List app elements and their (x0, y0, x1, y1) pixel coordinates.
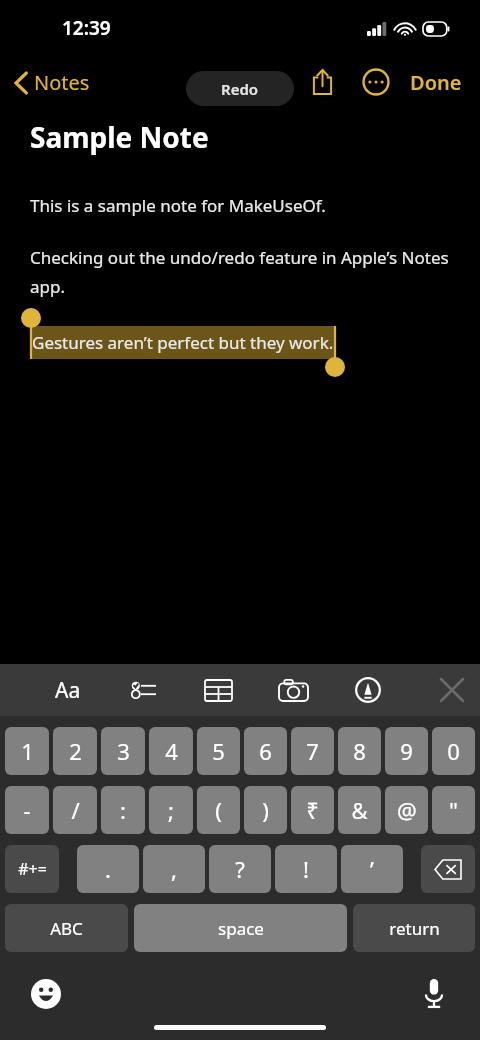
button[interactable]: & (338, 786, 381, 834)
button[interactable]: Format (44, 666, 92, 714)
button[interactable]: , (143, 845, 205, 893)
button[interactable]: ABC (5, 904, 128, 952)
button[interactable]: " (432, 786, 475, 834)
button[interactable]: return (353, 904, 475, 952)
staticText: 5 (212, 736, 225, 766)
staticText: & (351, 795, 368, 825)
staticText: ’ (370, 854, 374, 884)
staticText: ? (235, 854, 245, 884)
button[interactable]: Done (404, 63, 468, 102)
button[interactable]: Redo (186, 71, 294, 106)
staticText: ( (215, 795, 222, 825)
staticText: return (389, 917, 440, 940)
button[interactable]: ; (149, 786, 193, 834)
button[interactable]: ( (197, 786, 240, 834)
staticText: 8 (353, 736, 366, 766)
staticText: Aa (55, 676, 81, 705)
staticText: ! (303, 854, 309, 884)
button[interactable]: . (77, 845, 139, 893)
button[interactable]: : (101, 786, 145, 834)
staticText: 6 (259, 736, 272, 766)
button[interactable]: Close keyboard (428, 666, 476, 714)
button[interactable]: Dictation (416, 976, 452, 1012)
button[interactable]: space (134, 904, 347, 952)
staticText: This is a sample note for MakeUseOf. (30, 194, 326, 217)
staticText: 9 (400, 736, 413, 766)
staticText: Checking out the undo/redo feature in Ap… (30, 246, 450, 298)
staticText: 2 (69, 736, 82, 766)
button[interactable]: ’ (341, 845, 403, 893)
staticText: Redo (221, 79, 259, 99)
button[interactable]: Notes (10, 65, 95, 100)
button[interactable]: Markup (344, 666, 392, 714)
staticText: @ (397, 795, 417, 825)
staticText: ABC (50, 917, 83, 940)
button[interactable]: ) (244, 786, 287, 834)
staticText: - (23, 795, 31, 825)
staticText: Notes (34, 69, 90, 96)
staticText: ; (168, 795, 174, 825)
button[interactable]: - (5, 786, 49, 834)
staticText: ) (262, 795, 269, 825)
staticText: / (71, 795, 80, 825)
button[interactable]: 6 (244, 727, 287, 775)
button[interactable]: ? (209, 845, 271, 893)
staticText: : (120, 795, 126, 825)
staticText: 12:39 (62, 15, 111, 41)
staticText: ₹ (306, 795, 319, 825)
staticText: 1 (21, 736, 34, 766)
staticText: Gestures aren’t perfect but they work. (32, 331, 334, 354)
button[interactable]: 0 (432, 727, 475, 775)
button[interactable]: 2 (53, 727, 97, 775)
button[interactable]: 1 (5, 727, 49, 775)
button[interactable]: Backspace (421, 845, 475, 893)
staticText: . (105, 854, 111, 884)
button[interactable]: Table (194, 666, 242, 714)
button[interactable]: 7 (291, 727, 334, 775)
staticText: 4 (165, 736, 178, 766)
button[interactable]: Share (300, 60, 344, 104)
button[interactable]: Camera (269, 666, 317, 714)
button[interactable]: @ (385, 786, 428, 834)
staticText: 0 (447, 736, 460, 766)
staticText: space (218, 917, 264, 940)
staticText: Sample Note (30, 118, 209, 156)
staticText: Done (410, 69, 462, 96)
button[interactable]: 8 (338, 727, 381, 775)
button[interactable]: 4 (149, 727, 193, 775)
button[interactable]: More options (354, 60, 398, 104)
button[interactable]: Emoji (28, 976, 64, 1012)
staticText: , (171, 854, 177, 884)
button[interactable]: ₹ (291, 786, 334, 834)
button[interactable]: / (53, 786, 97, 834)
staticText: " (449, 795, 458, 825)
staticText: #+= (18, 858, 47, 880)
staticText: 7 (306, 736, 319, 766)
button[interactable]: ! (275, 845, 337, 893)
staticText: 3 (117, 736, 130, 766)
button[interactable]: Checklist (119, 666, 167, 714)
button[interactable]: #+= (5, 845, 59, 893)
button[interactable]: 3 (101, 727, 145, 775)
button[interactable]: 5 (197, 727, 240, 775)
button[interactable]: 9 (385, 727, 428, 775)
